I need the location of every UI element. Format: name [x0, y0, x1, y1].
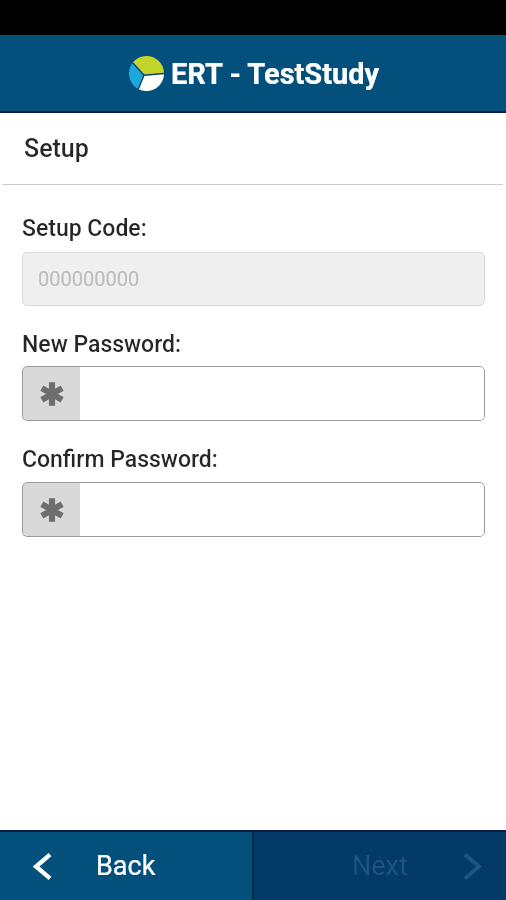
other: Password — [39, 381, 65, 407]
staticText: New Password: — [22, 331, 182, 358]
button[interactable]: Back — [0, 832, 252, 900]
staticText: Confirm Password: — [22, 446, 218, 473]
other: Back — [36, 853, 50, 880]
staticText: Back — [96, 850, 156, 882]
staticText: ERT - TestStudy — [171, 57, 380, 91]
other: Password — [39, 497, 65, 523]
staticText: Next — [352, 850, 408, 882]
staticText: 000000000 — [38, 267, 140, 290]
button[interactable]: Password — [23, 367, 484, 420]
button[interactable]: Next — [254, 832, 506, 900]
other: Next — [465, 853, 479, 880]
button[interactable]: Password — [23, 483, 484, 536]
staticText: Setup — [24, 134, 89, 163]
staticText: Setup Code: — [22, 215, 147, 242]
button[interactable]: 000000000 — [22, 252, 485, 306]
